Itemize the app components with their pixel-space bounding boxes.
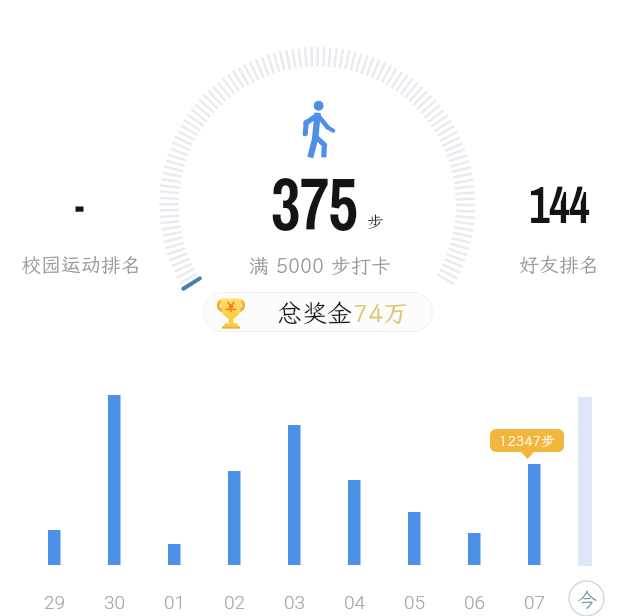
staticText: 01	[164, 591, 186, 613]
staticText: 04	[344, 591, 366, 613]
staticText: 03	[284, 591, 306, 613]
staticText: 总奖金	[277, 296, 353, 329]
other: Walking	[302, 100, 334, 158]
staticText: 05	[404, 591, 426, 613]
button[interactable]: 今天	[568, 580, 605, 616]
staticText: 30	[104, 591, 126, 613]
staticText: 144	[529, 170, 590, 239]
staticText: 02	[224, 591, 246, 613]
staticText: 校园运动排名	[21, 251, 141, 277]
staticText: 29	[44, 591, 66, 613]
staticText: 07	[524, 591, 546, 613]
staticText: 74万	[353, 296, 409, 329]
staticText: 12347步	[499, 432, 555, 450]
button[interactable]: 总奖金	[203, 292, 433, 332]
staticText: 步	[367, 210, 384, 232]
staticText: 今	[577, 586, 597, 612]
staticText: 06	[464, 591, 486, 613]
staticText: 满 5000 步打卡	[249, 252, 391, 278]
staticText: 375	[271, 153, 358, 253]
staticText: 好友排名	[519, 251, 599, 277]
